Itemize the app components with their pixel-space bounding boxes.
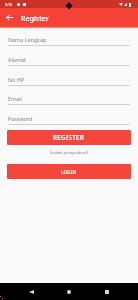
button[interactable]: Password — [8, 115, 130, 125]
staticText: Alamat — [8, 56, 26, 63]
staticText: Email — [8, 95, 22, 102]
button[interactable]: Home — [62, 283, 76, 300]
button[interactable]: Back — [24, 283, 38, 300]
button[interactable]: LOGIN — [7, 164, 131, 179]
button[interactable]: Back — [2, 11, 16, 25]
staticText: Sudah punya akun? — [50, 150, 89, 156]
staticText: LOGIN — [61, 169, 77, 175]
button[interactable]: REGISTER — [7, 130, 131, 145]
button[interactable]: No HP — [8, 76, 130, 86]
staticText: 3:13 — [5, 2, 13, 7]
staticText: No HP — [8, 76, 25, 83]
staticText: Register — [21, 13, 49, 23]
button[interactable]: Alamat — [8, 56, 130, 66]
staticText: Nama Lengkap — [8, 36, 47, 43]
button[interactable]: Email — [8, 95, 130, 105]
button[interactable]: Recents — [100, 283, 114, 300]
staticText: REGISTER — [53, 133, 85, 142]
button[interactable]: Nama Lengkap — [8, 36, 130, 46]
staticText: Password — [8, 115, 33, 122]
